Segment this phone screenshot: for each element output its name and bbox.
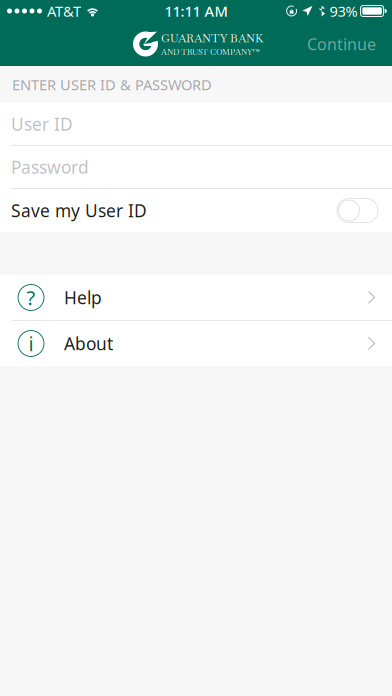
staticText: Help	[64, 286, 102, 309]
button[interactable]: i	[0, 321, 392, 366]
staticText: i	[28, 330, 33, 357]
staticText: AT&T	[47, 1, 81, 21]
staticText: Save my User ID	[11, 199, 147, 222]
button[interactable]: Password	[0, 146, 392, 188]
staticText: ENTER USER ID & PASSWORD	[12, 75, 212, 94]
staticText: Password	[11, 155, 89, 178]
staticText: 93%	[330, 1, 358, 21]
staticText: 11:11 AM	[164, 1, 227, 21]
button[interactable]: ?	[0, 275, 392, 320]
staticText: User ID	[11, 112, 73, 135]
staticText: About	[64, 332, 113, 355]
staticText: GUARANTY BANK	[161, 31, 263, 46]
button[interactable]: Save my User ID	[0, 189, 392, 232]
staticText: Continue	[307, 33, 376, 55]
button[interactable]: User ID	[0, 103, 392, 145]
button[interactable]: Continue	[291, 22, 392, 66]
staticText: AND TRUST COMPANY™	[161, 47, 260, 57]
staticText: ?	[26, 284, 35, 311]
